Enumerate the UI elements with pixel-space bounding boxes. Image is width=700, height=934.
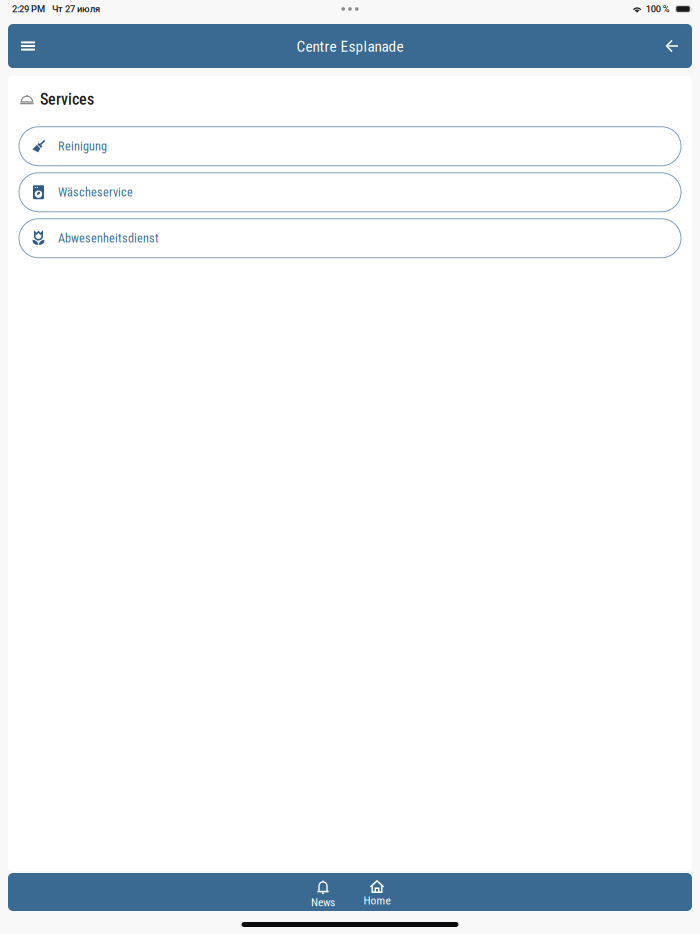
button[interactable]: Menu: [21, 24, 55, 68]
button[interactable]: Abwesenheitsdienst: [19, 219, 681, 258]
staticText: Reinigung: [58, 139, 107, 153]
button[interactable]: Wäscheservice: [19, 173, 681, 212]
staticText: Centre Esplanade: [296, 37, 403, 55]
button[interactable]: Home: [350, 873, 404, 910]
button[interactable]: News: [296, 873, 350, 910]
staticText: 2:29 PM: [12, 3, 45, 14]
button[interactable]: Back: [652, 24, 692, 68]
staticText: Wäscheservice: [58, 185, 133, 199]
staticText: Чт 27 июля: [52, 3, 100, 14]
staticText: Home: [363, 894, 390, 907]
staticText: 100 %: [646, 3, 670, 14]
staticText: Abwesenheitsdienst: [58, 231, 159, 245]
staticText: Services: [40, 90, 94, 109]
button[interactable]: Reinigung: [19, 127, 681, 166]
staticText: News: [311, 896, 335, 909]
